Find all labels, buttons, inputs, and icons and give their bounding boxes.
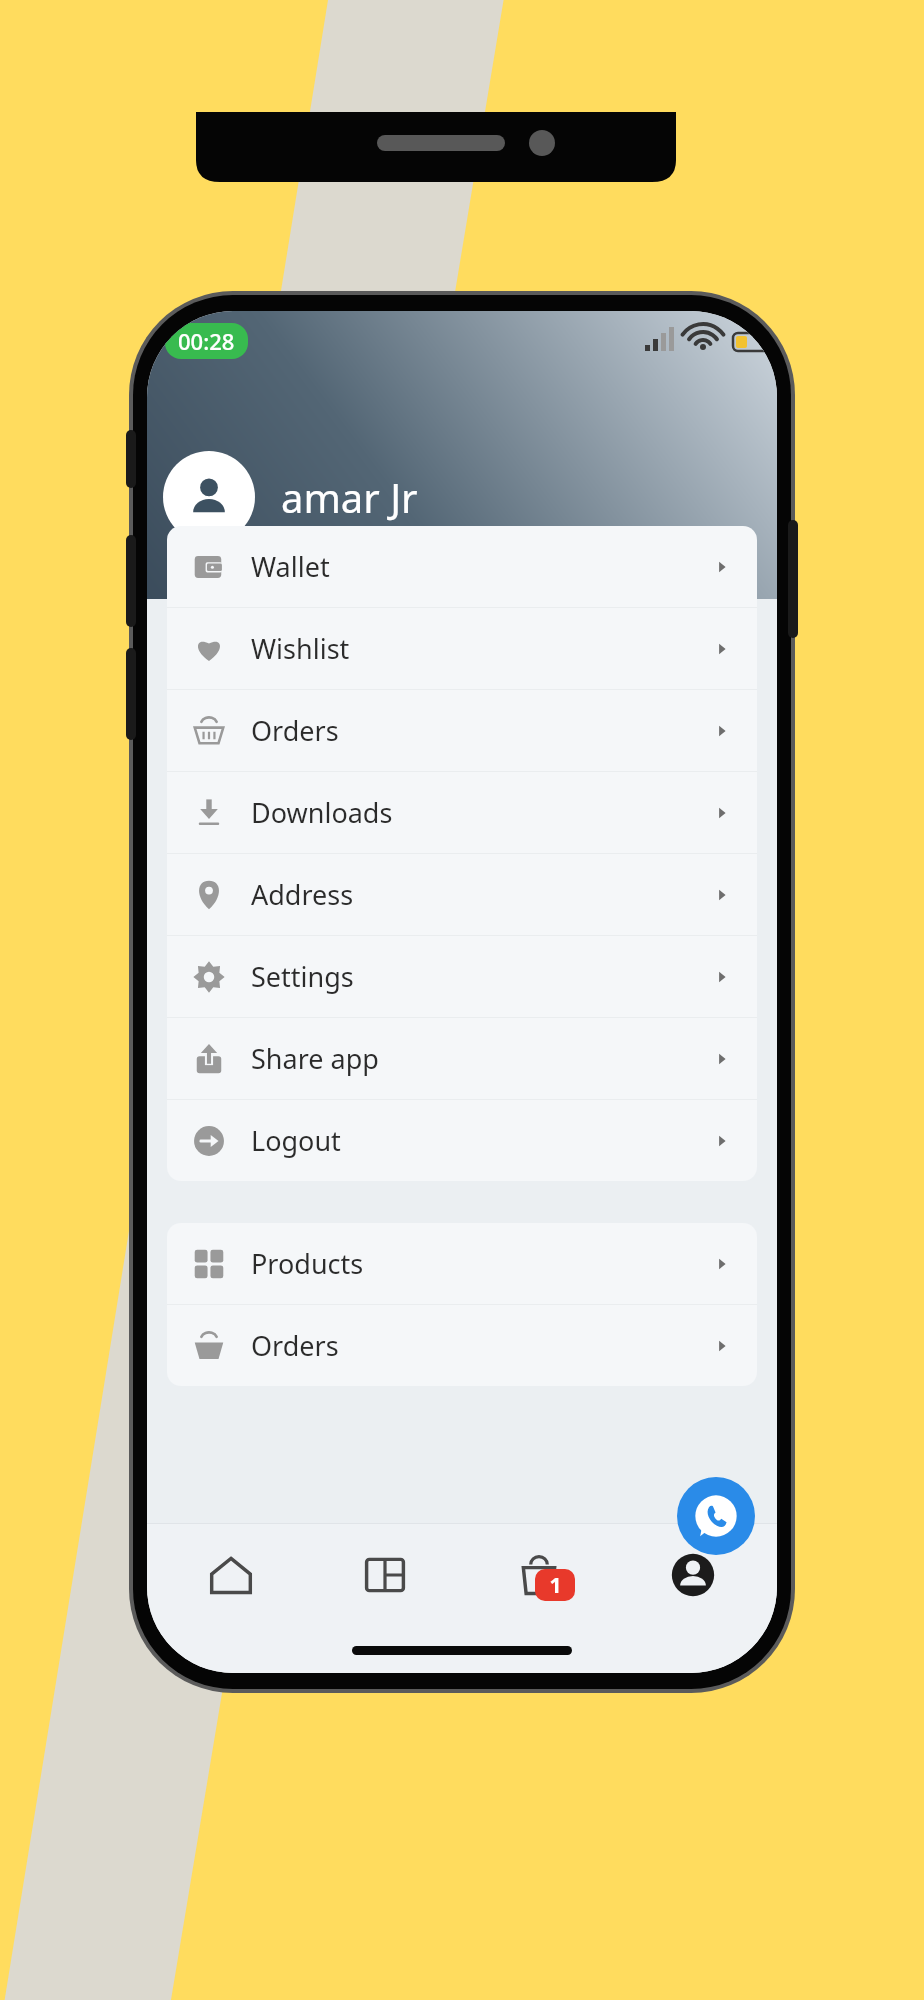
button[interactable]: Home — [161, 1523, 301, 1627]
staticText: Settings — [251, 958, 354, 995]
staticText: amar Jr — [281, 470, 418, 524]
staticText: Products — [251, 1245, 364, 1282]
button[interactable]: Address — [167, 854, 757, 935]
staticText: 1 — [549, 1571, 562, 1600]
staticText: Logout — [251, 1122, 341, 1159]
button[interactable]: Wishlist — [167, 608, 757, 689]
button[interactable]: Cart, 1 item — [469, 1523, 609, 1627]
staticText: Downloads — [251, 794, 393, 831]
button[interactable]: Share app — [167, 1018, 757, 1099]
button[interactable]: Chat on WhatsApp — [677, 1477, 755, 1555]
staticText: Orders — [251, 712, 339, 749]
button[interactable]: Settings — [167, 936, 757, 1017]
staticText: Wallet — [251, 548, 330, 585]
staticText: Address — [251, 876, 354, 913]
button[interactable]: Dashboard — [315, 1523, 455, 1627]
button[interactable]: Downloads — [167, 772, 757, 853]
staticText: Orders — [251, 1327, 339, 1364]
button[interactable]: Profile — [623, 1523, 763, 1627]
button[interactable]: Logout — [167, 1100, 757, 1181]
button[interactable]: Orders — [167, 690, 757, 771]
button[interactable]: Products — [167, 1223, 757, 1304]
button[interactable]: Orders — [167, 1305, 757, 1386]
staticText: 00:28 — [178, 326, 235, 356]
staticText: Share app — [251, 1040, 379, 1077]
staticText: Wishlist — [251, 630, 350, 667]
button[interactable]: Wallet — [167, 526, 757, 607]
